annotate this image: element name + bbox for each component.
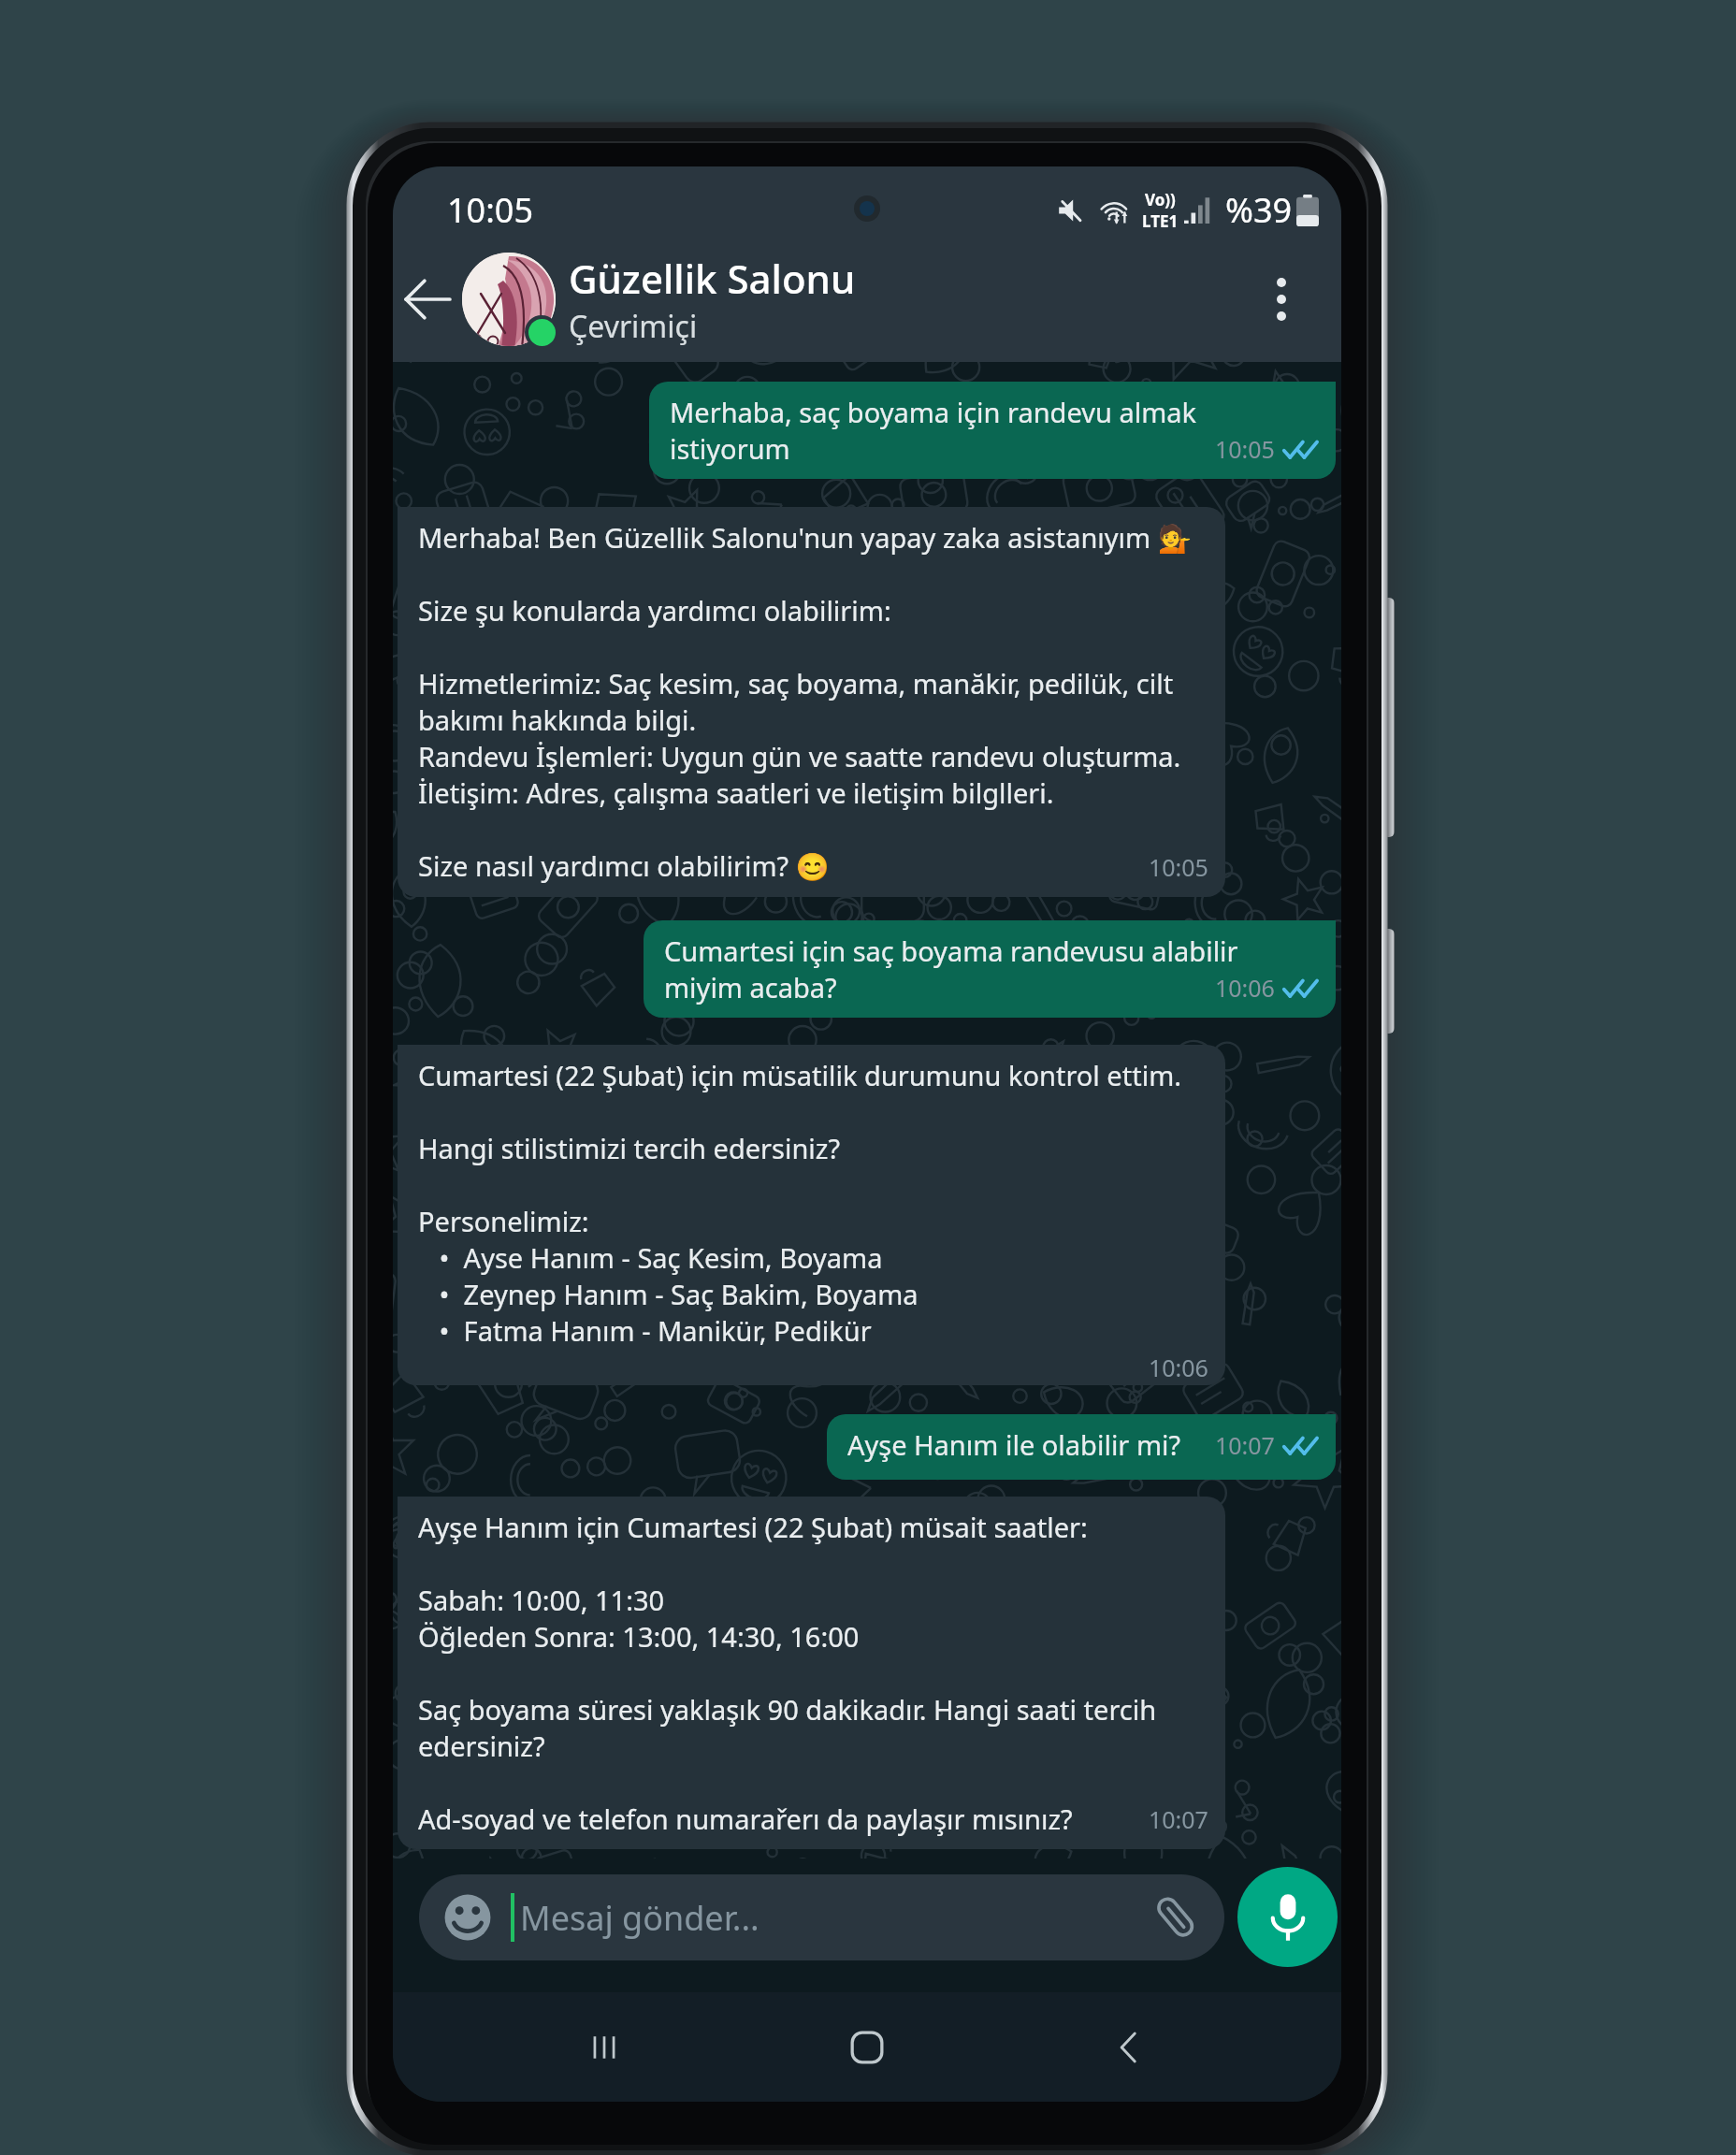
staticText: Vo)) (1145, 189, 1176, 210)
button[interactable]: More options (1238, 256, 1324, 342)
button[interactable]: Merhaba! Ben Güzellik Salonu'nun yapay z… (398, 507, 1225, 897)
button[interactable]: Emoji (419, 1874, 1224, 1960)
staticText: Merhaba, saç boyama için randevu almak i… (670, 394, 1197, 467)
staticText: 10:06 (1215, 972, 1275, 1004)
staticText: 10:05 (447, 187, 534, 233)
staticText: 10:07 (1149, 1803, 1208, 1835)
button[interactable]: Merhaba, saç boyama için randevu almak i… (649, 382, 1336, 479)
button[interactable]: Ayşe Hanım için Cumartesi (22 Şubat) müs… (398, 1497, 1225, 1849)
staticText: Ayşe Hanım için Cumartesi (22 Şubat) müs… (418, 1509, 1157, 1837)
staticText: Merhaba! Ben Güzellik Salonu'nun yapay z… (418, 519, 1192, 885)
button[interactable]: Voice message (1237, 1867, 1338, 1967)
button[interactable]: Back (1078, 1996, 1181, 2099)
button[interactable]: Cumartesi (22 Şubat) için müsatilik duru… (398, 1045, 1225, 1385)
button[interactable]: Attach (1151, 1893, 1200, 1942)
staticText: Cumartesi (22 Şubat) için müsatilik duru… (418, 1057, 1182, 1385)
staticText: Çevrimiçi (569, 306, 698, 347)
button[interactable]: Emoji (443, 1893, 492, 1942)
staticText: 10:05 (1149, 851, 1208, 883)
staticText: 10:05 (1215, 433, 1275, 465)
button[interactable]: Ayşe Hanım ile olabilir mi? (827, 1414, 1336, 1480)
staticText: Mesaj gönder... (520, 1895, 759, 1941)
staticText: Ayşe Hanım ile olabilir mi? (847, 1426, 1181, 1463)
staticText: 10:07 (1215, 1429, 1275, 1461)
staticText: Cumartesi için saç boyama randevusu alab… (664, 933, 1238, 1005)
staticText: LTE1 (1142, 210, 1179, 232)
staticText: 10:06 (1149, 1352, 1208, 1383)
button[interactable]: Cumartesi için saç boyama randevusu alab… (644, 920, 1336, 1018)
button[interactable]: Recents (553, 1996, 656, 2099)
button[interactable]: Home (816, 1996, 919, 2099)
staticText: %39 (1225, 187, 1293, 233)
button[interactable]: Back (393, 265, 462, 334)
button[interactable]: Güzellik Salonu (569, 252, 1238, 347)
staticText: Güzellik Salonu (569, 252, 856, 305)
